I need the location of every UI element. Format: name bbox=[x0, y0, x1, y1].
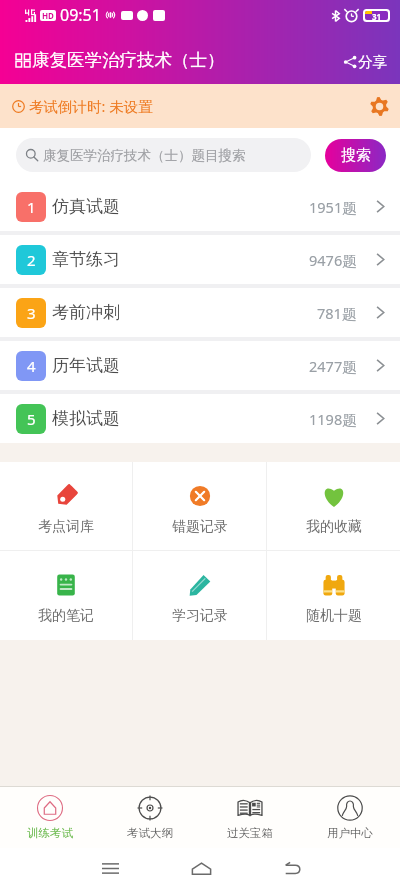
staticText: 1198题 bbox=[309, 409, 357, 429]
staticText: 错题记录 bbox=[172, 518, 228, 536]
staticText: 康复医学治疗技术（士）题目搜索 bbox=[43, 147, 246, 164]
button[interactable]: 2 bbox=[0, 235, 400, 284]
staticText: 考点词库 bbox=[38, 518, 94, 536]
staticText: 31 bbox=[372, 11, 382, 20]
staticText: 学习记录 bbox=[172, 607, 228, 625]
button[interactable]: 搜索 bbox=[325, 139, 386, 172]
button[interactable]: 用户中心 bbox=[300, 787, 400, 848]
staticText: 4 bbox=[27, 356, 36, 376]
staticText: 分享 bbox=[358, 53, 387, 71]
button[interactable]: 过关宝箱 bbox=[200, 787, 300, 848]
staticText: 仿真试题 bbox=[52, 196, 120, 217]
button[interactable]: Back bbox=[274, 852, 311, 885]
staticText: 2 bbox=[27, 250, 36, 270]
button[interactable]: 5 bbox=[0, 394, 400, 443]
staticText: 训练考试 bbox=[27, 826, 73, 840]
staticText: 考试大纲 bbox=[127, 826, 173, 840]
staticText: 随机十题 bbox=[306, 607, 362, 625]
staticText: 2477题 bbox=[309, 356, 357, 376]
staticText: 搜索 bbox=[341, 146, 371, 165]
button[interactable]: Settings bbox=[367, 93, 392, 120]
button[interactable]: 我的收藏 bbox=[267, 462, 400, 550]
staticText: 考前冲刺 bbox=[52, 302, 120, 323]
staticText: HD bbox=[42, 10, 54, 21]
staticText: 我的收藏 bbox=[306, 518, 362, 536]
button[interactable]: 我的笔记 bbox=[0, 551, 132, 640]
button[interactable]: 康复医学治疗技术（士）题目搜索 bbox=[16, 138, 311, 172]
staticText: 我的笔记 bbox=[38, 607, 94, 625]
button[interactable]: 学习记录 bbox=[133, 551, 266, 640]
button[interactable]: 随机十题 bbox=[267, 551, 400, 640]
staticText: 5 bbox=[27, 409, 36, 429]
button[interactable]: 考试大纲 bbox=[100, 787, 200, 848]
staticText: 考试倒计时: 未设置 bbox=[29, 96, 153, 116]
staticText: 9476题 bbox=[309, 250, 357, 270]
button[interactable]: Recents bbox=[92, 853, 129, 884]
staticText: 过关宝箱 bbox=[227, 826, 273, 840]
button[interactable]: 错题记录 bbox=[133, 462, 266, 550]
button[interactable]: 4 bbox=[0, 341, 400, 390]
button[interactable]: 1 bbox=[0, 182, 400, 231]
staticText: 模拟试题 bbox=[52, 408, 120, 429]
button[interactable]: Home bbox=[182, 852, 221, 885]
staticText: 章节练习 bbox=[52, 249, 120, 270]
button[interactable]: 分享 bbox=[340, 48, 391, 76]
button[interactable]: 考点词库 bbox=[0, 462, 132, 550]
button[interactable]: 3 bbox=[0, 288, 400, 337]
staticText: 历年试题 bbox=[52, 355, 120, 376]
staticText: 1 bbox=[27, 197, 36, 217]
staticText: 用户中心 bbox=[327, 826, 373, 840]
staticText: 781题 bbox=[317, 303, 357, 323]
staticText: 康复医学治疗技术（士） bbox=[32, 49, 225, 71]
staticText: 3 bbox=[27, 303, 36, 323]
staticText: 09:51 bbox=[60, 4, 101, 26]
button[interactable]: 训练考试 bbox=[0, 787, 100, 848]
staticText: 1951题 bbox=[309, 197, 357, 217]
